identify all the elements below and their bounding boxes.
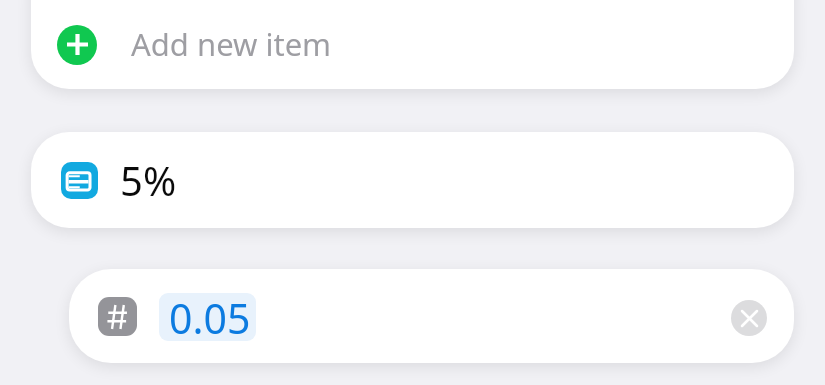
button[interactable]: 0.05 [69, 269, 794, 363]
staticText: Add new item [131, 23, 332, 65]
button[interactable]: Add new item [31, 0, 794, 89]
staticText: 5% [120, 153, 177, 207]
staticText: 0.05 [169, 293, 251, 338]
button[interactable]: 5% [31, 132, 794, 228]
button[interactable]: Clear value [731, 300, 767, 336]
